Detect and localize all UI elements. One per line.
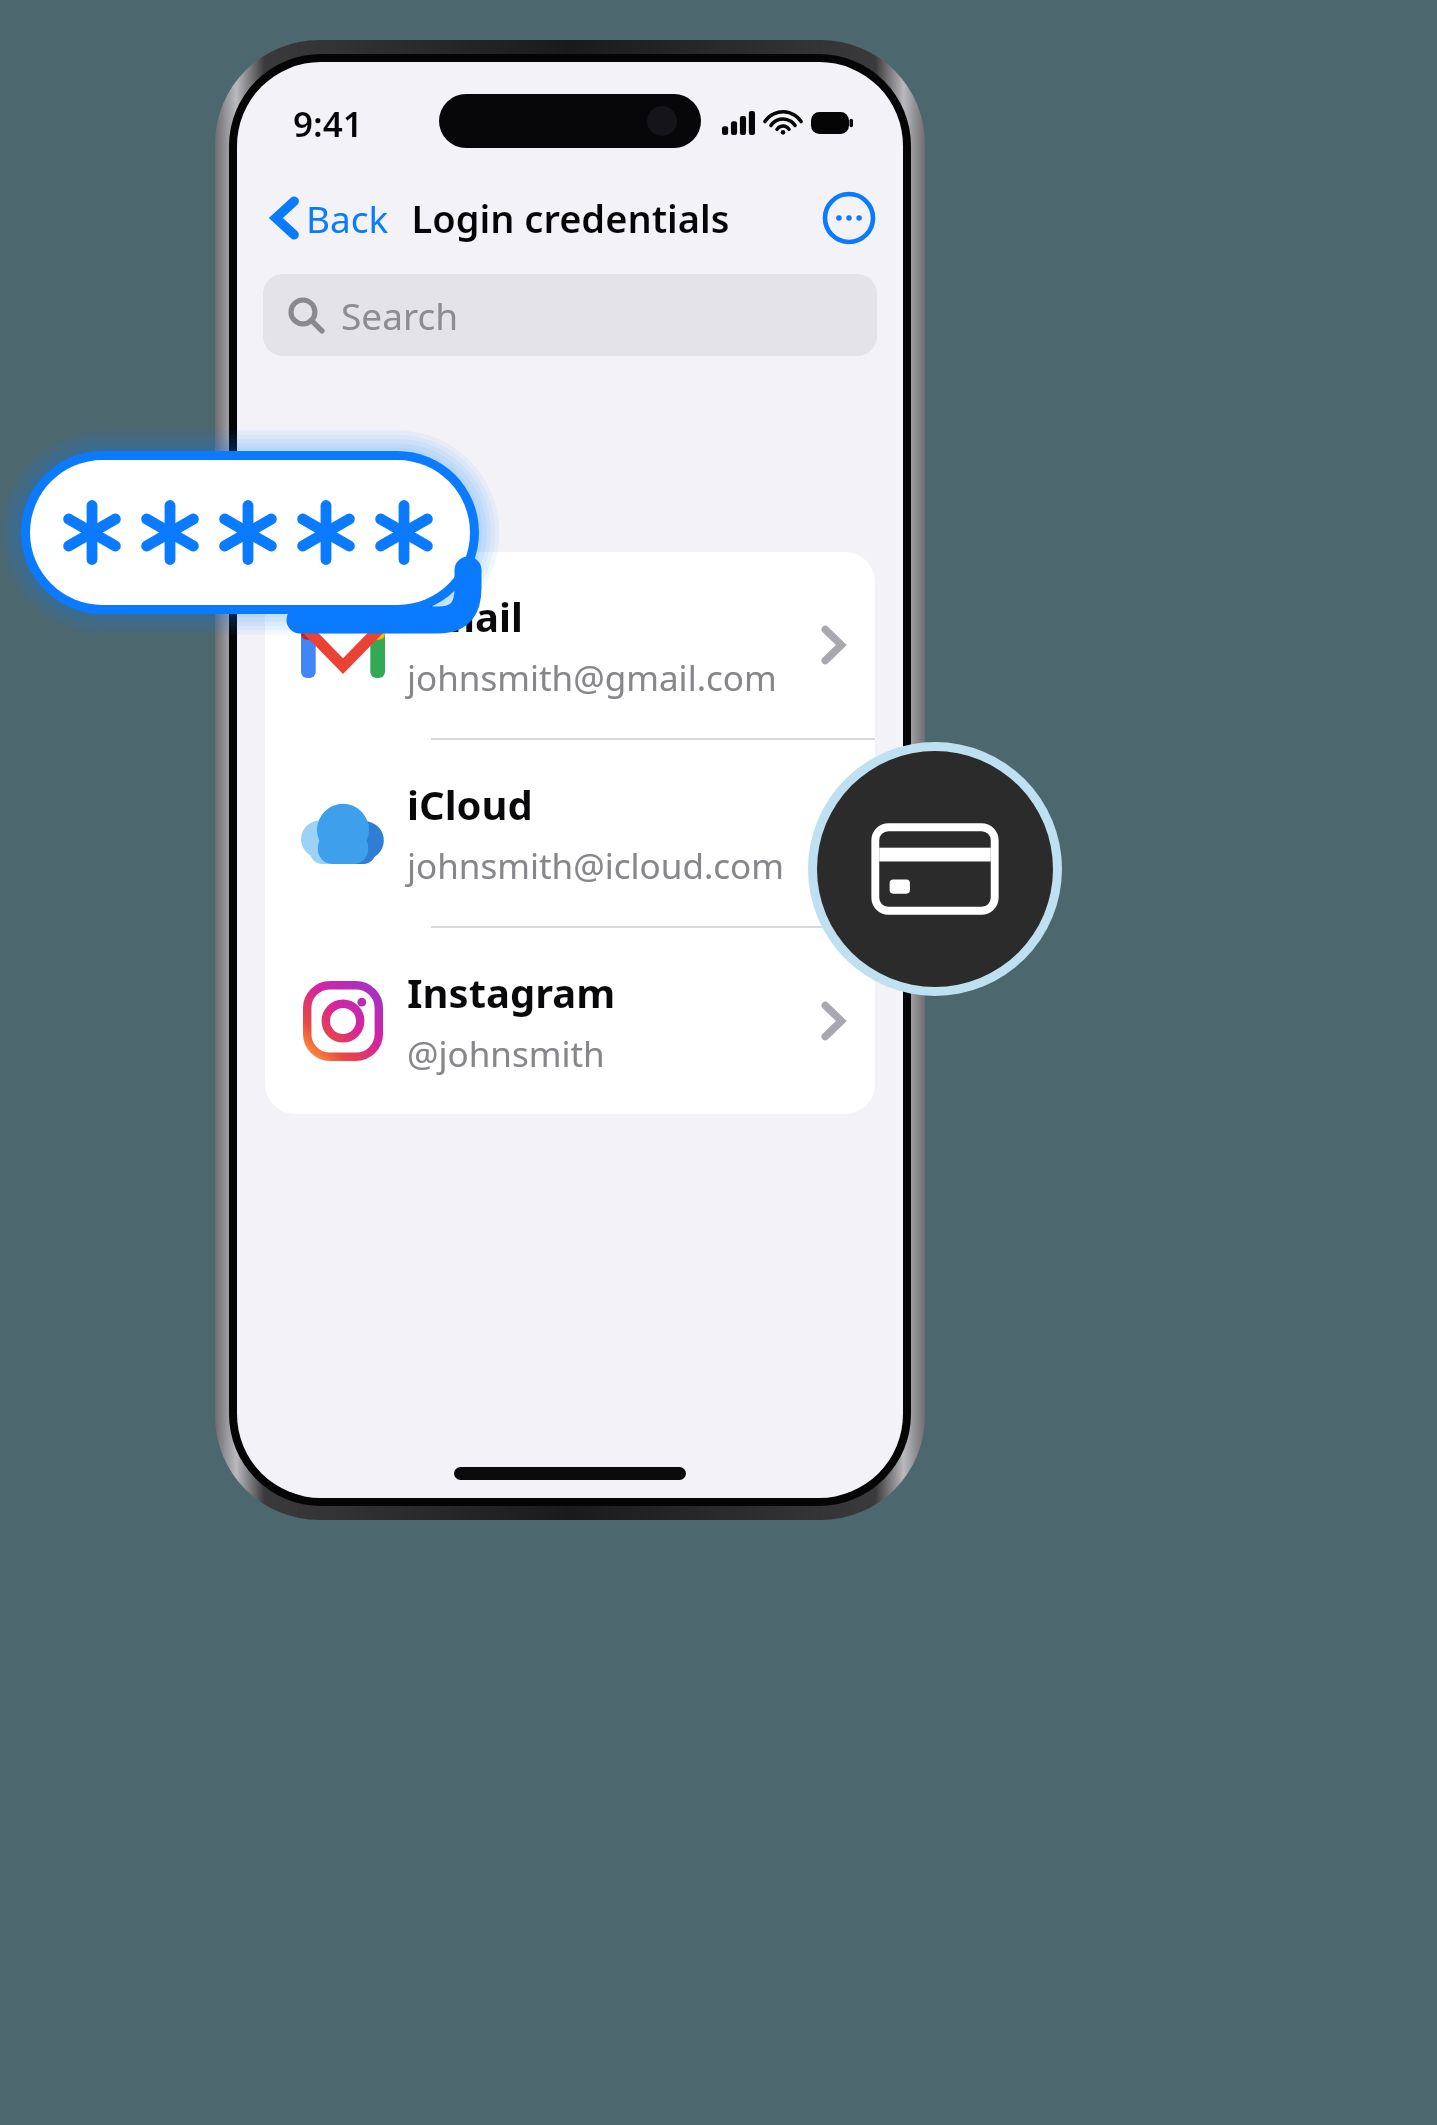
- staticText: Search: [341, 290, 459, 340]
- button[interactable]: Search: [263, 274, 877, 356]
- staticText: Instagram: [407, 965, 616, 1019]
- button[interactable]: Instagram: [265, 928, 875, 1114]
- staticText: johnsmith@gmail.com: [407, 654, 777, 702]
- staticText: 9:41: [293, 100, 363, 148]
- staticText: Gmail: [407, 589, 523, 643]
- button[interactable]: Gmail: [265, 552, 875, 738]
- staticText: Back: [306, 193, 389, 243]
- staticText: johnsmith@icloud.com: [407, 842, 784, 890]
- button[interactable]: iCloud: [265, 740, 875, 926]
- button[interactable]: More options: [821, 190, 877, 246]
- button[interactable]: Back: [265, 187, 397, 249]
- staticText: iCloud: [407, 777, 533, 831]
- staticText: Login credentials: [411, 192, 730, 244]
- button[interactable]: Add payment card: [808, 742, 1062, 996]
- staticText: @johnsmith: [407, 1030, 605, 1078]
